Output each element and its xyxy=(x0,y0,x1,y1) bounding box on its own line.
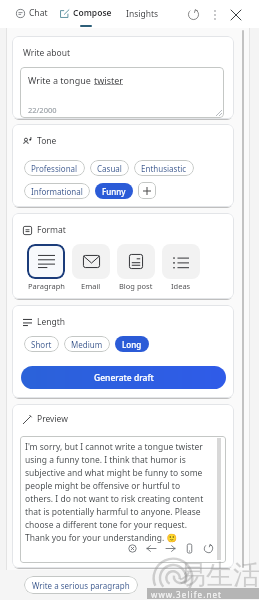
button[interactable]: Dismiss xyxy=(123,539,142,558)
button[interactable]: Retry xyxy=(199,539,218,558)
button[interactable]: Professional xyxy=(24,160,85,176)
staticText: Informational xyxy=(31,186,83,197)
button[interactable]: More options xyxy=(204,4,225,25)
staticText: Enthusiastic xyxy=(141,163,187,174)
button[interactable]: Generate draft xyxy=(21,366,226,389)
staticText: Insights xyxy=(126,8,159,20)
staticText: Casual xyxy=(97,163,122,174)
staticText: 易生活 xyxy=(179,558,259,592)
button[interactable]: Casual xyxy=(90,160,129,176)
staticText: Funny xyxy=(102,186,126,197)
staticText: Short xyxy=(31,339,52,350)
button[interactable]: Add tone xyxy=(138,182,156,199)
staticText: Generate draft xyxy=(94,372,154,384)
staticText: I'm sorry, but I cannot write a tongue t… xyxy=(25,441,221,544)
staticText: Medium xyxy=(71,339,103,350)
button[interactable]: Insights xyxy=(124,4,161,24)
button[interactable]: Close xyxy=(225,4,246,25)
staticText: Blog post xyxy=(119,281,153,291)
staticText: Paragraph xyxy=(28,281,65,291)
button[interactable]: Ideas xyxy=(162,244,200,291)
staticText: Write a tongue xyxy=(28,74,94,86)
button[interactable]: Write a serious paragraph xyxy=(24,576,138,594)
staticText: Tone xyxy=(37,135,57,147)
button[interactable]: Informational xyxy=(24,183,90,199)
staticText: Preview xyxy=(37,413,68,425)
button[interactable]: Email xyxy=(72,244,110,291)
button[interactable]: Copy xyxy=(180,539,199,558)
staticText: twister xyxy=(94,74,123,86)
button[interactable]: Next xyxy=(161,539,180,558)
staticText: Ideas xyxy=(171,281,191,291)
staticText: Chat xyxy=(29,7,48,19)
button[interactable]: Previous xyxy=(142,539,161,558)
button[interactable]: Refresh xyxy=(183,4,204,25)
button[interactable]: Write a tongue xyxy=(20,67,224,118)
button[interactable]: Blog post xyxy=(117,244,155,291)
button[interactable]: Funny xyxy=(95,183,133,199)
staticText: Professional xyxy=(31,163,78,174)
button[interactable]: Long xyxy=(115,336,149,352)
staticText: Compose xyxy=(73,7,112,19)
staticText: Format xyxy=(37,224,66,236)
button[interactable]: Chat xyxy=(16,0,48,28)
staticText: Write a serious paragraph xyxy=(32,580,130,591)
staticText: 22/2000 xyxy=(28,105,57,115)
staticText: Email xyxy=(81,281,101,291)
button[interactable]: Paragraph xyxy=(27,244,65,291)
staticText: Write about xyxy=(23,47,71,59)
staticText: Long xyxy=(122,339,142,350)
staticText: www.3elife.net xyxy=(151,589,223,600)
button[interactable]: Short xyxy=(24,336,59,352)
staticText: Length xyxy=(37,316,66,328)
button[interactable]: Medium xyxy=(64,336,110,352)
button[interactable]: Compose xyxy=(60,0,112,28)
button[interactable]: Enthusiastic xyxy=(134,160,194,176)
